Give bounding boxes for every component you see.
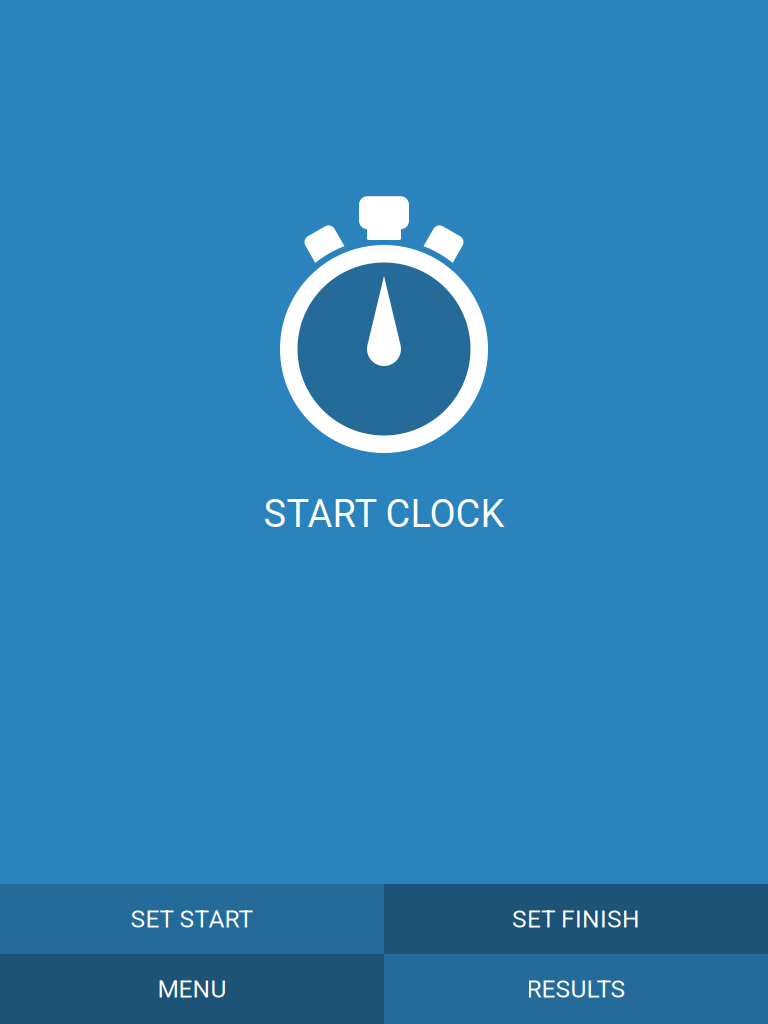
staticText: MENU — [157, 975, 226, 1003]
staticText: START CLOCK — [263, 492, 504, 536]
button[interactable]: RESULTS — [384, 954, 768, 1024]
staticText: SET FINISH — [512, 905, 640, 933]
button[interactable]: SET FINISH — [384, 884, 768, 954]
button[interactable]: MENU — [0, 954, 384, 1024]
staticText: SET START — [130, 905, 253, 933]
button[interactable]: Start clock — [254, 185, 514, 541]
button[interactable]: SET START — [0, 884, 384, 954]
staticText: RESULTS — [526, 975, 625, 1003]
